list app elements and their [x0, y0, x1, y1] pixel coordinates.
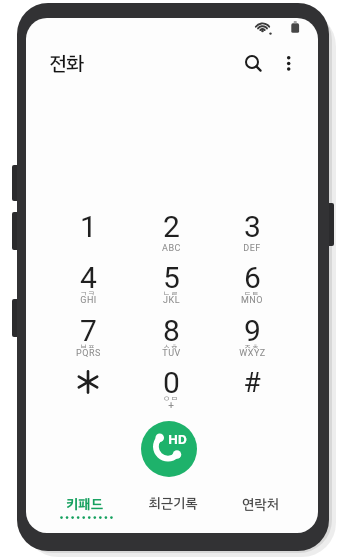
staticText: 키패드	[66, 494, 103, 514]
button[interactable]	[141, 421, 197, 477]
button[interactable]	[133, 492, 212, 532]
staticText: 8	[163, 313, 180, 348]
staticText: GHI	[80, 295, 97, 306]
button[interactable]	[211, 251, 293, 303]
staticText: +	[168, 400, 174, 412]
staticText: ㅇㅁ	[163, 393, 179, 403]
button[interactable]	[130, 356, 212, 408]
button[interactable]	[130, 200, 212, 252]
staticText: 0	[163, 365, 180, 400]
staticText: TUV	[162, 348, 181, 359]
button[interactable]	[211, 356, 293, 408]
staticText: HD	[168, 431, 187, 447]
staticText: ㅈㅊ	[244, 341, 260, 351]
staticText: 전화	[49, 49, 84, 77]
button[interactable]	[130, 251, 212, 303]
staticText: 5	[163, 260, 180, 295]
button[interactable]	[46, 492, 124, 532]
staticText: 7	[80, 313, 97, 348]
staticText: MNO	[241, 295, 263, 306]
staticText: 연락처	[242, 494, 279, 514]
button[interactable]	[47, 304, 129, 356]
button[interactable]	[211, 200, 293, 252]
staticText: 2	[163, 209, 180, 244]
staticText: JKL	[163, 295, 180, 306]
staticText: 6	[244, 260, 261, 295]
button[interactable]	[220, 492, 299, 532]
staticText: 1	[80, 209, 97, 244]
staticText: ㄴㄹ	[163, 288, 179, 298]
button[interactable]	[47, 356, 129, 408]
staticText: PQRS	[76, 348, 101, 359]
button[interactable]	[44, 50, 92, 76]
staticText: 9	[244, 313, 261, 348]
staticText: #	[243, 366, 261, 399]
staticText: ABC	[162, 243, 181, 254]
button[interactable]	[47, 200, 129, 252]
staticText: ㄱㅋ	[80, 288, 96, 298]
staticText: ㅅㅎ	[163, 341, 179, 351]
staticText: ㄷㅌ	[244, 288, 260, 298]
staticText: 4	[80, 260, 97, 295]
staticText: DEF	[243, 243, 261, 254]
button[interactable]	[211, 304, 293, 356]
staticText: 3	[244, 209, 261, 244]
staticText: WXYZ	[239, 348, 266, 359]
staticText: 최근기록	[148, 493, 198, 513]
button[interactable]	[47, 251, 129, 303]
staticText: ㅂㅍ	[80, 341, 96, 351]
button[interactable]	[130, 304, 212, 356]
